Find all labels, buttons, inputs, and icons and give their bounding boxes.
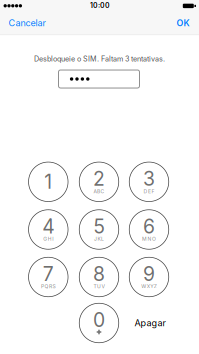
button[interactable]: 2 <box>79 162 119 202</box>
button[interactable]: 9 <box>129 257 169 297</box>
staticText: 0 <box>93 308 105 332</box>
staticText: GHI <box>43 236 53 242</box>
staticText: 10:00 <box>90 1 110 10</box>
staticText: 1 <box>44 170 52 193</box>
staticText: WXYZ <box>141 283 157 289</box>
button[interactable]: 0 <box>79 303 119 343</box>
button[interactable]: OK <box>168 11 198 35</box>
staticText: MNO <box>142 236 156 242</box>
staticText: 2 <box>93 167 105 190</box>
staticText: Cancelar <box>8 17 45 28</box>
button[interactable]: 7 <box>28 257 68 297</box>
staticText: 8 <box>93 262 105 286</box>
staticText: Desbloqueie o SIM. Faltam 3 tentativas. <box>34 55 165 63</box>
button[interactable]: 4 <box>28 210 68 249</box>
button[interactable]: 3 <box>129 162 169 202</box>
button[interactable]: 5 <box>79 210 119 249</box>
button[interactable]: Cancelar <box>0 11 55 35</box>
button[interactable]: Apagar <box>128 308 172 338</box>
staticText: Apagar <box>134 317 165 328</box>
staticText: 9 <box>143 262 155 286</box>
button[interactable]: 1 <box>28 162 68 202</box>
staticText: ABC <box>93 188 104 194</box>
staticText: OK <box>176 18 189 28</box>
staticText: 3 <box>143 167 155 190</box>
staticText: 7 <box>43 262 54 286</box>
staticText: 6 <box>143 215 155 238</box>
staticText: TUV <box>93 283 104 289</box>
button[interactable]: 6 <box>129 210 169 249</box>
staticText: JKL <box>94 236 104 242</box>
staticText: PQRS <box>41 283 55 289</box>
staticText: DEF <box>143 188 154 194</box>
staticText: 4 <box>42 215 54 238</box>
staticText: 5 <box>93 215 104 238</box>
button[interactable]: 8 <box>79 257 119 297</box>
